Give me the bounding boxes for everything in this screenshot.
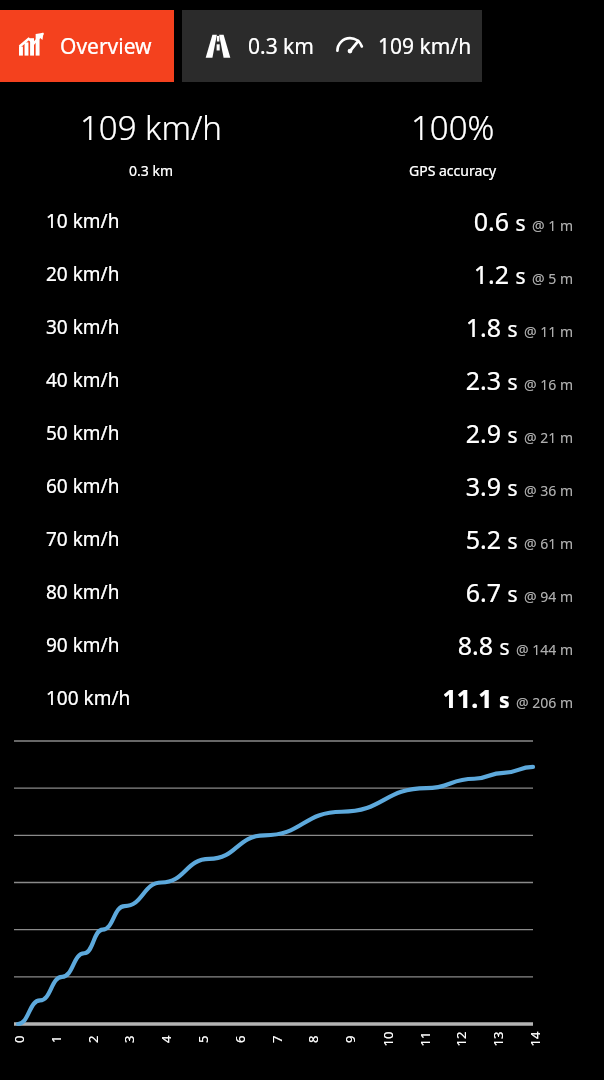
staticText: 8	[304, 1035, 322, 1043]
button[interactable]: 80 km/h	[0, 565, 604, 618]
staticText: 2.3 s @ 16 m	[465, 363, 573, 397]
staticText: GPS accuracy	[409, 161, 497, 180]
staticText: 0.3 km	[248, 32, 314, 61]
staticText: 0.6 s @ 1 m	[473, 204, 573, 238]
staticText: 109 km/h	[80, 105, 222, 150]
staticText: 50 km/h	[46, 420, 120, 446]
staticText: 1	[47, 1035, 65, 1043]
button[interactable]: 30 km/h	[0, 300, 604, 353]
button[interactable]: 20 km/h	[0, 247, 604, 300]
staticText: 30 km/h	[46, 314, 120, 340]
staticText: 6.7 s @ 94 m	[465, 575, 573, 609]
staticText: 7	[268, 1035, 286, 1043]
button[interactable]: 50 km/h	[0, 406, 604, 459]
staticText: 2	[84, 1035, 102, 1043]
staticText: 100 km/h	[46, 685, 131, 711]
button[interactable]: 40 km/h	[0, 353, 604, 406]
staticText: 3	[120, 1035, 138, 1043]
staticText: 3.9 s @ 36 m	[465, 469, 573, 503]
staticText: 1.2 s @ 5 m	[473, 257, 573, 291]
staticText: 10 km/h	[46, 208, 120, 234]
button[interactable]: 100 km/h	[0, 671, 604, 724]
staticText: 100%	[411, 105, 495, 150]
staticText: 90 km/h	[46, 632, 120, 658]
staticText: 9	[341, 1035, 359, 1043]
staticText: 8.8 s @ 144 m	[457, 628, 573, 662]
staticText: 80 km/h	[46, 579, 120, 605]
staticText: 1.8 s @ 11 m	[465, 310, 573, 344]
staticText: Overview	[60, 32, 152, 61]
staticText: 2.9 s @ 21 m	[465, 416, 573, 450]
staticText: 10	[378, 1031, 396, 1046]
staticText: 6	[231, 1035, 249, 1043]
staticText: 0	[10, 1035, 28, 1043]
button[interactable]: 90 km/h	[0, 618, 604, 671]
staticText: 4	[157, 1035, 175, 1043]
staticText: 12	[451, 1031, 469, 1046]
button[interactable]: 10 km/h	[0, 194, 604, 247]
staticText: 14	[525, 1031, 543, 1046]
staticText: 40 km/h	[46, 367, 120, 393]
button[interactable]: 0.3 km	[182, 10, 482, 82]
staticText: 60 km/h	[46, 473, 120, 499]
staticText: 11	[415, 1031, 433, 1046]
staticText: 109 km/h	[378, 32, 472, 61]
button[interactable]: 70 km/h	[0, 512, 604, 565]
staticText: 20 km/h	[46, 261, 120, 287]
staticText: 70 km/h	[46, 526, 120, 552]
button[interactable]: Overview	[0, 10, 174, 82]
staticText: 5	[194, 1035, 212, 1043]
staticText: 0.3 km	[129, 161, 173, 180]
staticText: 5.2 s @ 61 m	[465, 522, 573, 556]
button[interactable]: 60 km/h	[0, 459, 604, 512]
staticText: 11.1 s @ 206 m	[442, 681, 573, 715]
staticText: 13	[488, 1031, 506, 1046]
